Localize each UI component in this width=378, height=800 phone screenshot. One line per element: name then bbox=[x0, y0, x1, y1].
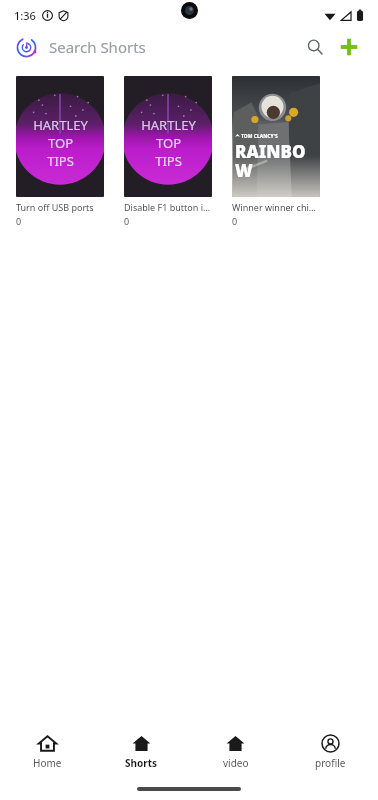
button[interactable]: Search bbox=[300, 32, 330, 62]
staticText: video bbox=[223, 756, 249, 770]
staticText: Search Shorts bbox=[49, 37, 146, 57]
staticText: TOP bbox=[48, 134, 73, 152]
staticText: TIPS bbox=[155, 152, 182, 170]
staticText: 0 bbox=[124, 215, 130, 227]
button[interactable]: profile bbox=[283, 726, 378, 778]
staticText: HARTLEY bbox=[33, 116, 88, 134]
staticText: HARTLEY bbox=[141, 116, 196, 134]
staticText: TOP bbox=[156, 134, 181, 152]
staticText: TIPS bbox=[47, 152, 74, 170]
button[interactable]: Search Shorts bbox=[49, 30, 300, 64]
staticText: profile bbox=[315, 756, 346, 770]
staticText: Winner winner chick… bbox=[232, 201, 320, 213]
button[interactable]: Home bbox=[0, 726, 94, 778]
staticText: 0 bbox=[16, 215, 22, 227]
staticText: 0 bbox=[232, 215, 238, 227]
button[interactable]: TOM CLANCY'S bbox=[226, 70, 326, 233]
staticText: Disable F1 button in… bbox=[124, 201, 212, 213]
button[interactable]: HARTLEY bbox=[10, 70, 110, 233]
staticText: 1:36 bbox=[14, 8, 36, 23]
staticText: Home bbox=[33, 756, 62, 770]
button[interactable]: Create bbox=[334, 32, 364, 62]
staticText: RAINBOW bbox=[235, 140, 320, 182]
staticText: Shorts bbox=[125, 756, 158, 770]
button[interactable]: video bbox=[188, 726, 283, 778]
staticText: Turn off USB ports bbox=[16, 201, 94, 213]
button[interactable]: HARTLEY bbox=[118, 70, 218, 233]
other: App logo bbox=[16, 37, 37, 58]
button[interactable]: Shorts bbox=[94, 726, 188, 778]
staticText: TOM CLANCY'S bbox=[241, 133, 278, 140]
